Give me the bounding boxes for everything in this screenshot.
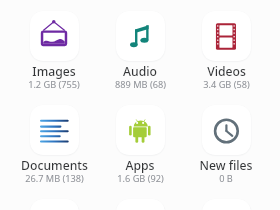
button[interactable]: Audio — [97, 11, 183, 93]
button[interactable]: Documents — [11, 105, 97, 187]
button[interactable]: New files — [183, 105, 269, 187]
staticText: 889 MB (68) — [115, 78, 166, 91]
button[interactable]: Images — [11, 11, 97, 93]
staticText: 3.4 GB (58) — [203, 78, 250, 91]
staticText: Apps — [125, 157, 155, 174]
staticText: Videos — [207, 63, 246, 80]
staticText: Documents — [21, 157, 88, 174]
button[interactable]: Videos — [183, 11, 269, 93]
staticText: Images — [32, 63, 76, 80]
staticText: 0 B — [219, 172, 233, 185]
staticText: Audio — [123, 63, 157, 80]
staticText: 1.6 GB (92) — [117, 172, 164, 185]
staticText: 26.7 MB (138) — [25, 172, 84, 185]
staticText: 1.2 GB (755) — [28, 78, 80, 91]
button[interactable]: Apps — [97, 105, 183, 187]
staticText: New files — [199, 157, 253, 174]
